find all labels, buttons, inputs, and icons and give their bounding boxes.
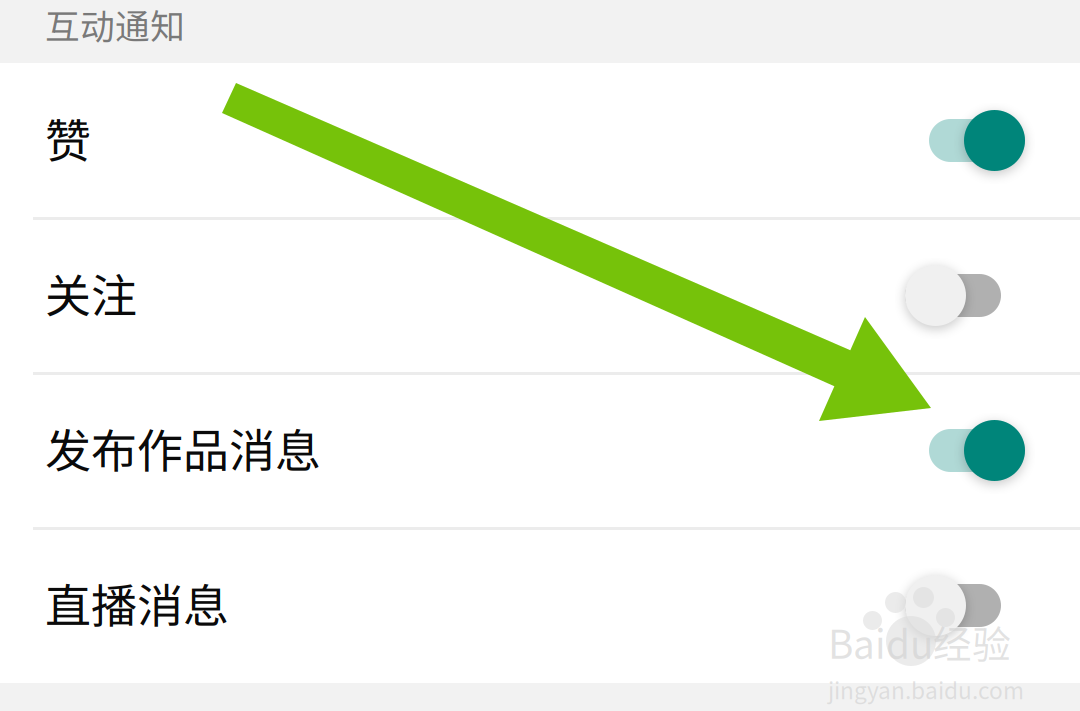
button[interactable]: 关注: [0, 218, 1080, 373]
staticText: 互动通知: [45, 0, 185, 49]
staticText: jingyan.baidu.com: [828, 673, 1024, 706]
staticText: 赞: [45, 104, 91, 171]
staticText: 直播消息: [45, 569, 229, 636]
button[interactable]: 赞: [0, 63, 1080, 218]
button[interactable]: 关注, off: [905, 258, 1025, 332]
button[interactable]: 赞, on: [905, 103, 1025, 177]
button[interactable]: 发布作品消息, on: [905, 413, 1025, 487]
button[interactable]: 直播消息, off: [905, 568, 1025, 642]
staticText: 发布作品消息: [45, 414, 321, 481]
staticText: 关注: [45, 259, 137, 326]
staticText: Baidu经验: [828, 614, 1011, 670]
button[interactable]: 直播消息: [0, 528, 1080, 683]
button[interactable]: 发布作品消息: [0, 373, 1080, 528]
